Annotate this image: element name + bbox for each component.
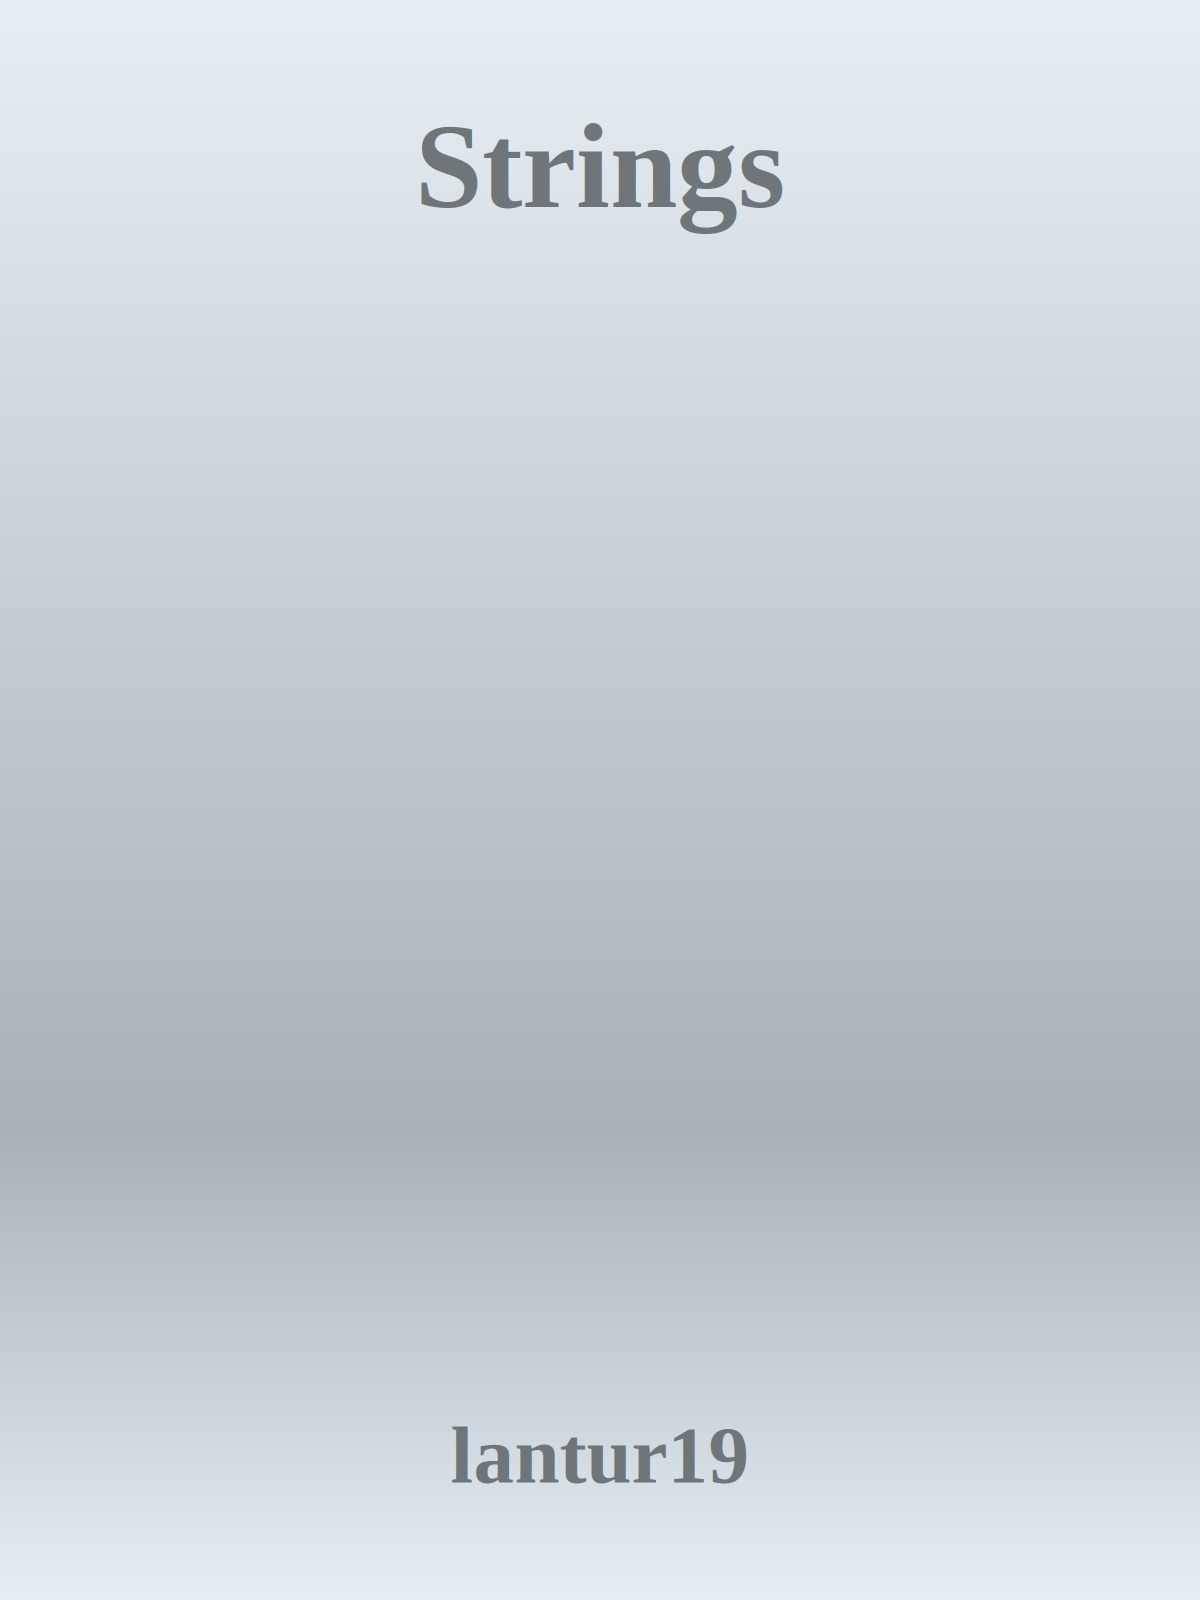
staticText: Strings (415, 99, 785, 233)
staticText: lantur19 (450, 1410, 749, 1500)
